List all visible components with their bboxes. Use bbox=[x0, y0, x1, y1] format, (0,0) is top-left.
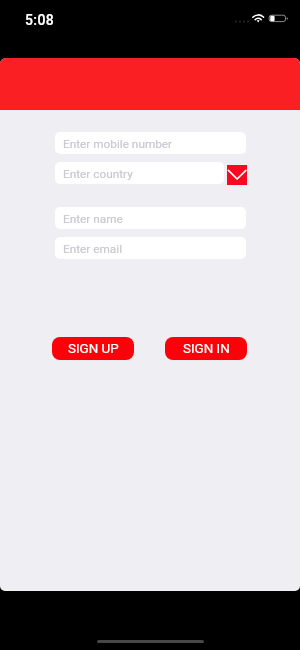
button[interactable]: SIGN IN bbox=[165, 337, 247, 360]
staticText: Enter email bbox=[63, 242, 123, 256]
staticText: SIGN IN bbox=[183, 341, 230, 357]
button[interactable]: Select country bbox=[227, 165, 247, 185]
staticText: Enter name bbox=[63, 212, 123, 226]
staticText: SIGN UP bbox=[68, 341, 119, 357]
staticText: Enter country bbox=[63, 167, 133, 181]
button[interactable]: SIGN UP bbox=[52, 337, 134, 360]
button[interactable]: Enter country bbox=[55, 162, 224, 184]
staticText: Enter mobile number bbox=[63, 137, 173, 151]
button[interactable]: Enter mobile number bbox=[55, 132, 246, 154]
button[interactable]: Enter name bbox=[55, 207, 246, 229]
staticText: 5:08 bbox=[25, 12, 55, 28]
button[interactable]: Enter email bbox=[55, 237, 246, 259]
